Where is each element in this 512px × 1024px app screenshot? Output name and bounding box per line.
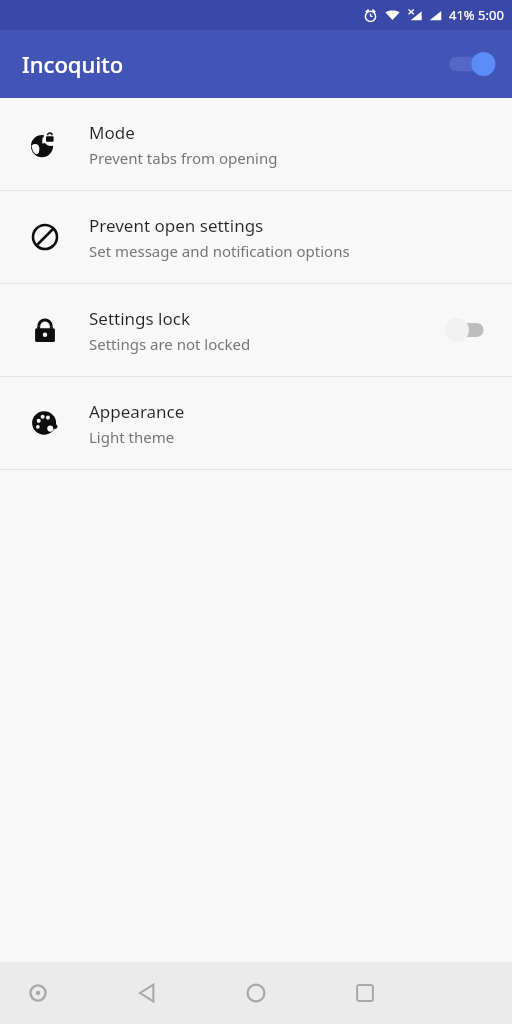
staticText: Mode xyxy=(89,121,135,144)
button[interactable]: Recent apps xyxy=(333,962,397,1024)
staticText: 41% 5:00 xyxy=(449,6,504,24)
staticText: Light theme xyxy=(89,427,175,447)
staticText: Appearance xyxy=(89,400,185,423)
button[interactable]: Prevent open settings xyxy=(0,191,512,283)
button[interactable]: Mode xyxy=(0,98,512,190)
staticText: Set message and notification options xyxy=(89,241,350,261)
staticText: Incoquito xyxy=(22,49,124,79)
staticText: Prevent open settings xyxy=(89,214,264,237)
button[interactable]: Back xyxy=(115,962,179,1024)
button[interactable]: Assistant xyxy=(16,971,60,1015)
button[interactable]: Appearance xyxy=(0,377,512,469)
button[interactable]: Settings lock xyxy=(0,284,512,376)
button[interactable]: Home xyxy=(224,962,288,1024)
staticText: Settings lock xyxy=(89,307,191,330)
staticText: Settings are not locked xyxy=(89,334,251,354)
button[interactable]: Toggle Incoquito xyxy=(444,42,500,86)
button[interactable]: Settings lock toggle xyxy=(439,310,495,350)
staticText: Prevent tabs from opening xyxy=(89,148,278,168)
